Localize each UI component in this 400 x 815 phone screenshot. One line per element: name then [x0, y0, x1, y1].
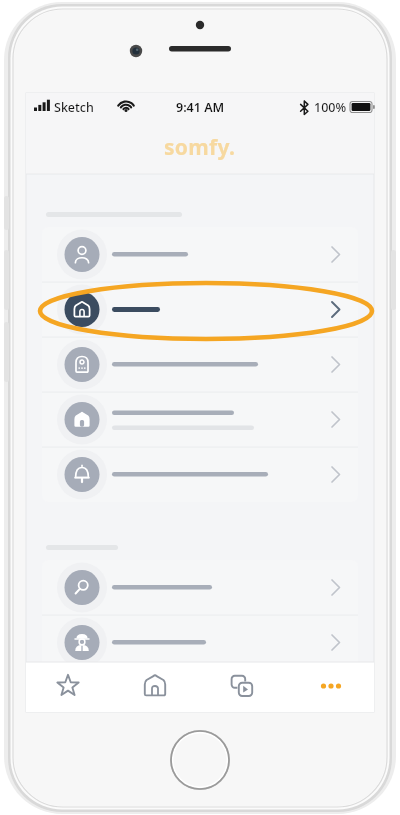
button[interactable]: Alarm keypad: [42, 337, 358, 392]
button[interactable]: My account: [42, 227, 358, 282]
button[interactable]: Find an installer: [42, 615, 358, 670]
staticText: 100%: [314, 99, 347, 116]
button[interactable]: Search devices: [42, 560, 358, 615]
staticText: Sketch: [54, 99, 94, 116]
staticText: somfy.: [164, 133, 236, 162]
button[interactable]: My home: [42, 282, 358, 337]
button[interactable]: Favourites: [26, 662, 113, 712]
button[interactable]: Home: [113, 662, 200, 712]
staticText: 9:41 AM: [176, 99, 225, 116]
button[interactable]: Scenes: [200, 662, 287, 712]
button[interactable]: Home automation: [42, 392, 358, 447]
button[interactable]: More: [287, 662, 374, 712]
button[interactable]: Doorbell: [42, 447, 358, 502]
